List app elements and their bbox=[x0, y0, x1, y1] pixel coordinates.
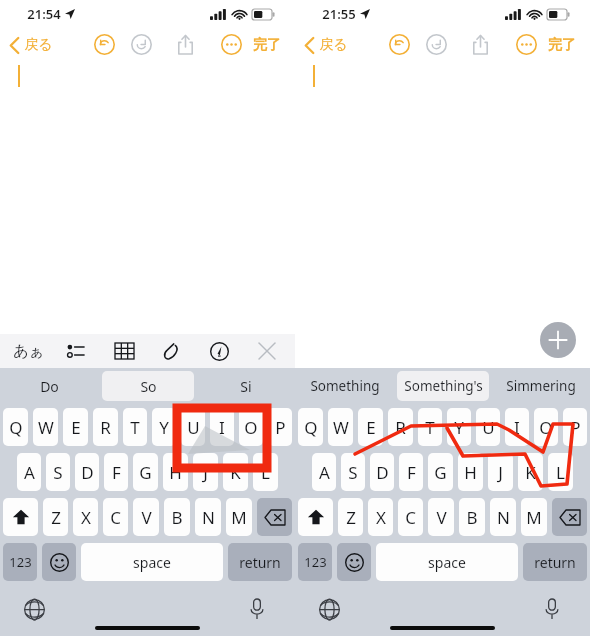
button[interactable]: K bbox=[223, 453, 248, 491]
button[interactable]: Z bbox=[43, 498, 68, 536]
staticText: Z bbox=[51, 506, 61, 529]
button[interactable]: Emoji bbox=[42, 543, 76, 581]
button[interactable]: L bbox=[548, 453, 573, 491]
button[interactable]: H bbox=[163, 453, 188, 491]
button[interactable]: Shift bbox=[3, 498, 38, 536]
button[interactable]: J bbox=[488, 453, 513, 491]
button[interactable]: O bbox=[534, 408, 558, 446]
button[interactable]: 戻る bbox=[6, 33, 57, 57]
button[interactable]: S bbox=[46, 453, 70, 491]
button[interactable]: Z bbox=[338, 498, 363, 536]
button[interactable]: Add bbox=[540, 322, 576, 358]
button[interactable]: S bbox=[341, 453, 365, 491]
button[interactable]: Numbers bbox=[3, 543, 37, 581]
button[interactable]: C bbox=[103, 498, 128, 536]
button[interactable]: T bbox=[418, 408, 442, 446]
button[interactable]: X bbox=[368, 498, 393, 536]
button[interactable]: W bbox=[328, 408, 353, 446]
button[interactable]: More bbox=[508, 28, 544, 61]
button[interactable]: space bbox=[81, 543, 223, 581]
button[interactable]: Change keyboard bbox=[313, 593, 345, 625]
staticText: A bbox=[319, 461, 330, 484]
button[interactable]: Backspace bbox=[552, 498, 587, 536]
button[interactable]: M bbox=[226, 498, 252, 536]
button[interactable]: M bbox=[521, 498, 547, 536]
button[interactable]: Y bbox=[447, 408, 471, 446]
button[interactable]: List bbox=[56, 334, 96, 368]
button[interactable]: Q bbox=[298, 408, 323, 446]
button[interactable]: P bbox=[268, 408, 292, 446]
button[interactable]: A bbox=[312, 453, 336, 491]
button[interactable]: Redo bbox=[123, 28, 159, 61]
button[interactable]: Share bbox=[462, 28, 498, 61]
staticText: 123 bbox=[9, 553, 32, 571]
button[interactable]: T bbox=[123, 408, 147, 446]
button[interactable]: R bbox=[388, 408, 413, 446]
button[interactable]: Undo bbox=[86, 28, 122, 61]
button[interactable]: L bbox=[253, 453, 278, 491]
button[interactable]: D bbox=[75, 453, 99, 491]
button[interactable]: C bbox=[398, 498, 423, 536]
button[interactable]: D bbox=[370, 453, 394, 491]
button[interactable]: V bbox=[428, 498, 454, 536]
button[interactable]: A bbox=[17, 453, 41, 491]
button[interactable]: B bbox=[459, 498, 485, 536]
button[interactable]: Text format bbox=[8, 334, 48, 368]
button[interactable]: return bbox=[228, 543, 292, 581]
button[interactable]: Si bbox=[200, 371, 292, 401]
button[interactable]: 完了 bbox=[249, 33, 285, 57]
button[interactable]: Undo bbox=[381, 28, 417, 61]
button[interactable]: Share bbox=[167, 28, 203, 61]
button[interactable]: Change keyboard bbox=[18, 593, 50, 625]
staticText: 21:55 bbox=[322, 5, 356, 23]
button[interactable]: P bbox=[563, 408, 587, 446]
button[interactable]: Numbers bbox=[298, 543, 332, 581]
button[interactable]: U bbox=[181, 408, 205, 446]
button[interactable]: Dictate bbox=[536, 593, 568, 625]
button[interactable]: 完了 bbox=[544, 33, 580, 57]
button[interactable]: Emoji bbox=[337, 543, 371, 581]
button[interactable]: R bbox=[93, 408, 118, 446]
button[interactable]: Table bbox=[104, 334, 144, 368]
button[interactable]: W bbox=[33, 408, 58, 446]
button[interactable]: space bbox=[376, 543, 518, 581]
button[interactable]: Q bbox=[3, 408, 28, 446]
button[interactable]: Something bbox=[298, 371, 391, 401]
button[interactable]: V bbox=[133, 498, 159, 536]
button[interactable]: O bbox=[239, 408, 263, 446]
button[interactable]: J bbox=[193, 453, 218, 491]
button[interactable]: I bbox=[210, 408, 234, 446]
button[interactable]: N bbox=[195, 498, 221, 536]
button[interactable]: G bbox=[428, 453, 453, 491]
staticText: C bbox=[405, 506, 416, 529]
button[interactable]: Y bbox=[152, 408, 176, 446]
button[interactable]: F bbox=[104, 453, 128, 491]
button[interactable]: E bbox=[358, 408, 383, 446]
button[interactable]: Simmering bbox=[495, 371, 587, 401]
button[interactable]: Backspace bbox=[257, 498, 292, 536]
button[interactable]: K bbox=[518, 453, 543, 491]
button[interactable]: G bbox=[133, 453, 158, 491]
button[interactable]: return bbox=[523, 543, 587, 581]
button[interactable]: Attach bbox=[151, 334, 191, 368]
button[interactable]: Do bbox=[3, 371, 96, 401]
button[interactable]: Redo bbox=[418, 28, 454, 61]
button[interactable]: X bbox=[73, 498, 98, 536]
button[interactable]: Something's bbox=[397, 371, 489, 401]
staticText: Si bbox=[240, 377, 252, 396]
button[interactable]: H bbox=[458, 453, 483, 491]
button[interactable]: E bbox=[63, 408, 88, 446]
staticText: F bbox=[112, 461, 121, 484]
button[interactable]: U bbox=[476, 408, 500, 446]
button[interactable]: Close bbox=[247, 334, 287, 368]
button[interactable]: More bbox=[213, 28, 249, 61]
button[interactable]: Dictate bbox=[241, 593, 273, 625]
button[interactable]: N bbox=[490, 498, 516, 536]
button[interactable]: Shift bbox=[298, 498, 333, 536]
button[interactable]: F bbox=[399, 453, 423, 491]
button[interactable]: B bbox=[164, 498, 190, 536]
button[interactable]: 戻る bbox=[301, 33, 352, 57]
button[interactable]: So bbox=[102, 371, 194, 401]
button[interactable]: I bbox=[505, 408, 529, 446]
button[interactable]: Markup bbox=[199, 334, 239, 368]
